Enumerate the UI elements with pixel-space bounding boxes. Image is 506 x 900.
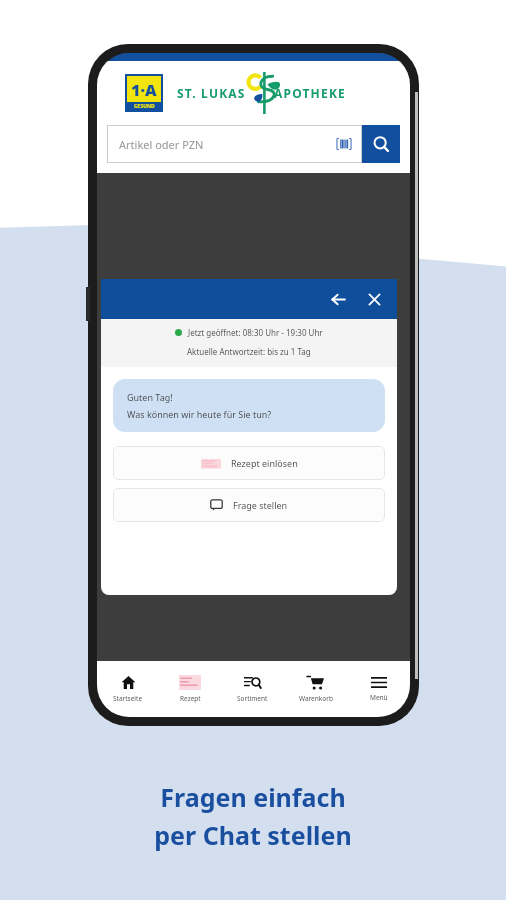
button[interactable]: Schließen bbox=[357, 282, 391, 316]
button[interactable]: Menü bbox=[347, 661, 410, 717]
staticText: Frage stellen bbox=[233, 499, 288, 511]
staticText: Artikel oder PZN bbox=[119, 137, 204, 152]
staticText: Warenkorb bbox=[299, 694, 333, 703]
button[interactable]: Rezept bbox=[159, 661, 221, 717]
button[interactable]: Sortiment bbox=[221, 661, 284, 717]
staticText: Rezept bbox=[180, 694, 201, 703]
staticText: ST. LUKAS bbox=[177, 85, 246, 101]
staticText: Sortiment bbox=[237, 694, 268, 703]
staticText: Startseite bbox=[113, 694, 143, 703]
staticText: Guten Tag! bbox=[127, 391, 173, 403]
button[interactable]: Zurück bbox=[321, 282, 355, 316]
staticText: GESUND bbox=[134, 103, 155, 110]
staticText: 1·A bbox=[131, 79, 157, 101]
button[interactable]: Frage stellen bbox=[113, 488, 385, 522]
staticText: Jetzt geöffnet: 08:30 Uhr - 19:30 Uhr bbox=[188, 327, 323, 338]
button[interactable]: Suchen bbox=[362, 125, 400, 163]
staticText: Fragen einfach bbox=[160, 780, 346, 814]
staticText: Was können wir heute für Sie tun? bbox=[127, 408, 272, 420]
button[interactable]: Rezept einlösen bbox=[113, 446, 385, 480]
button[interactable]: Warenkorb bbox=[284, 661, 347, 717]
button[interactable]: Artikel oder PZN bbox=[107, 125, 362, 163]
staticText: Aktuelle Antwortzeit: bis zu 1 Tag bbox=[187, 346, 311, 357]
staticText: Menü bbox=[370, 693, 388, 702]
staticText: Rezept einlösen bbox=[231, 457, 298, 469]
staticText: per Chat stellen bbox=[154, 818, 352, 852]
button[interactable]: Startseite bbox=[97, 661, 159, 717]
staticText: APOTHEKE bbox=[274, 85, 347, 101]
